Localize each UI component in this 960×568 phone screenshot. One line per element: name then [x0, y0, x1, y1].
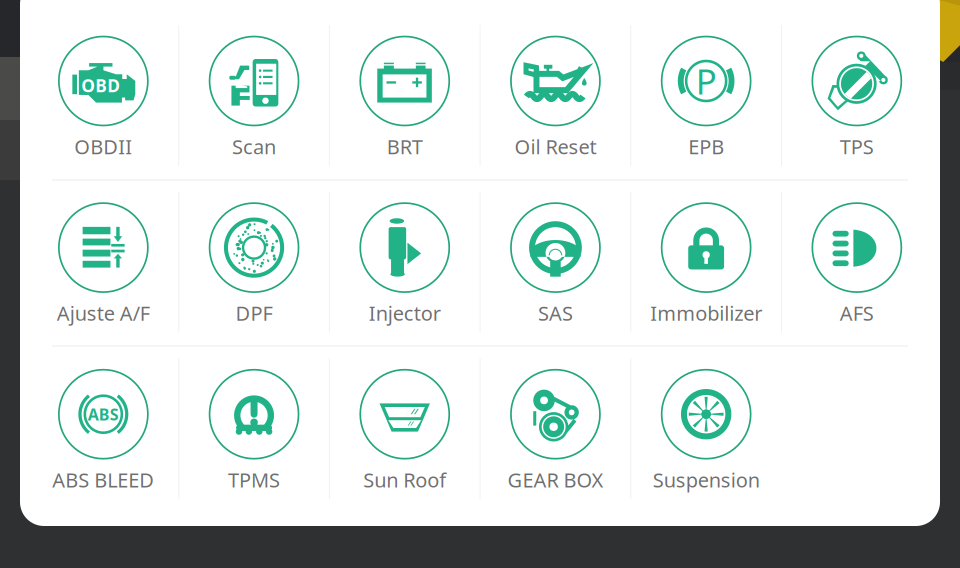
button[interactable]: TPS: [781, 36, 932, 177]
staticText: ABS BLEED: [52, 466, 154, 493]
button[interactable]: Ajuste A/F: [28, 203, 179, 344]
button[interactable]: P: [631, 36, 781, 177]
button[interactable]: DPF: [179, 203, 329, 344]
staticText: OBDII: [74, 133, 132, 160]
staticText: TPS: [840, 133, 874, 160]
staticText: Injector: [369, 300, 441, 326]
staticText: Scan: [232, 133, 276, 160]
button[interactable]: AFS: [781, 203, 932, 344]
button[interactable]: Scan: [179, 36, 329, 177]
button[interactable]: Injector: [329, 203, 480, 344]
button[interactable]: Sun Roof: [329, 370, 480, 511]
button[interactable]: BRT: [329, 36, 480, 177]
staticText: TPMS: [228, 466, 280, 493]
staticText: Immobilizer: [650, 300, 762, 326]
button[interactable]: Suspension: [631, 370, 781, 511]
staticText: OBD: [81, 74, 120, 97]
staticText: ABS: [88, 404, 119, 425]
staticText: Suspension: [653, 466, 760, 493]
button[interactable]: Oil Reset: [480, 36, 631, 177]
staticText: SAS: [538, 300, 573, 326]
button[interactable]: OBD: [28, 36, 179, 177]
button[interactable]: Immobilizer: [631, 203, 781, 344]
button[interactable]: TPMS: [179, 370, 329, 511]
staticText: Sun Roof: [363, 466, 446, 493]
staticText: BRT: [387, 133, 423, 160]
staticText: Oil Reset: [514, 133, 596, 160]
button[interactable]: GEAR BOX: [480, 370, 631, 511]
staticText: GEAR BOX: [507, 466, 603, 493]
staticText: EPB: [688, 133, 724, 160]
staticText: DPF: [235, 300, 272, 326]
button[interactable]: SAS: [480, 203, 631, 344]
staticText: AFS: [840, 300, 874, 326]
button[interactable]: ABS: [28, 370, 179, 511]
staticText: Ajuste A/F: [57, 300, 150, 326]
staticText: P: [696, 58, 717, 104]
